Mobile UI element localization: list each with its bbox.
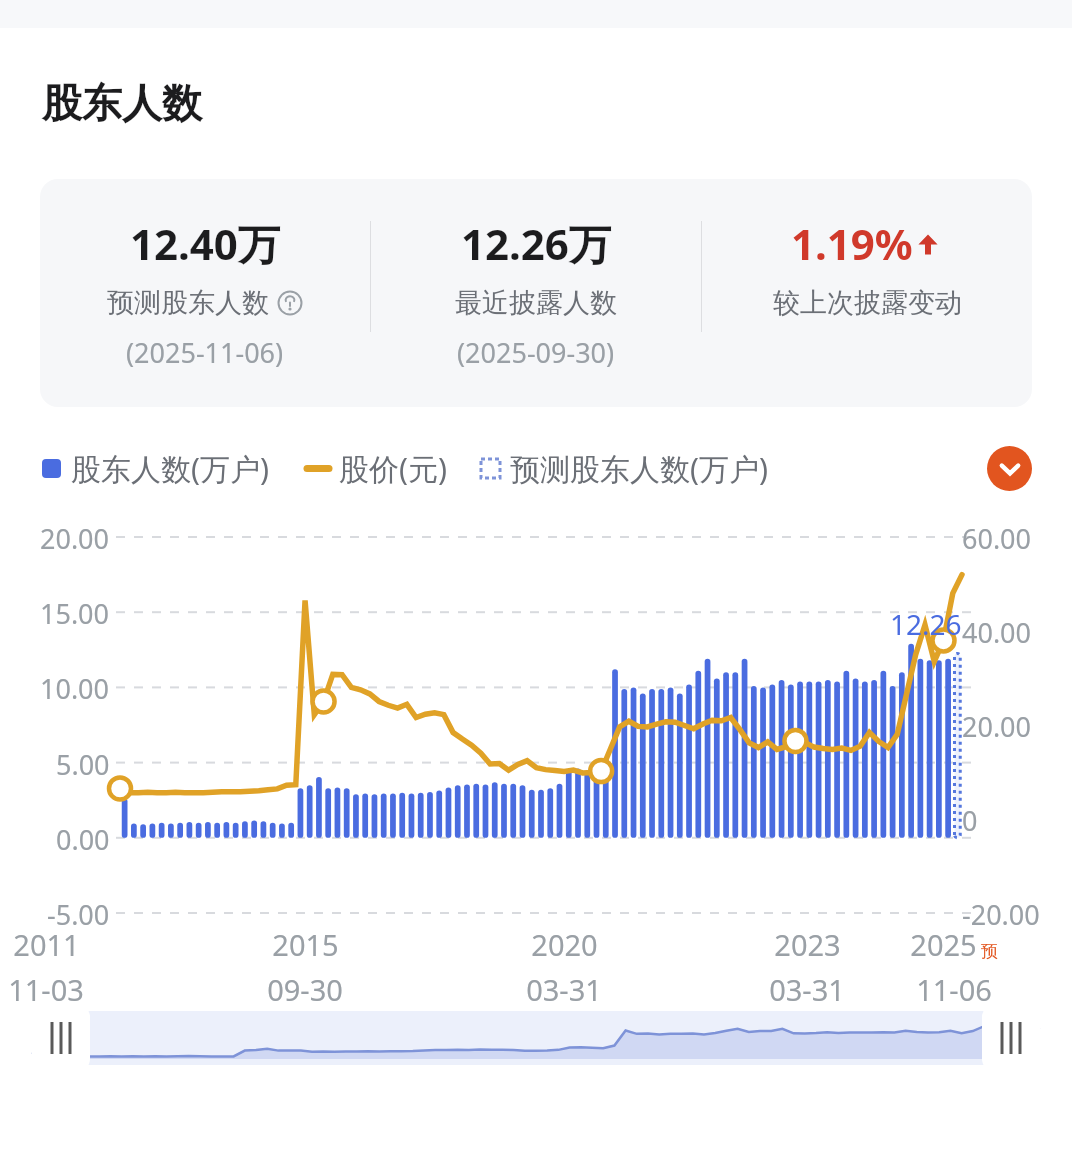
button[interactable]: 展开 [987,446,1032,491]
staticText: 最近披露人数 [455,286,617,320]
staticText: (2025-09-30) [457,334,615,371]
staticText: 40.00 [962,614,1032,651]
staticText: 20.00 [40,520,110,557]
staticText: 0.00 [56,821,110,858]
staticText: 2023 [774,925,841,964]
staticText: 股东人数(万户) [71,448,269,489]
staticText: 09-30 [267,970,343,1009]
button[interactable] [0,513,1072,993]
staticText: 12.26 [890,605,962,643]
staticText: 11-03 [8,970,84,1009]
staticText: 60.00 [962,520,1032,557]
staticText: 03-31 [526,970,602,1009]
staticText: 0 [962,802,978,839]
button[interactable]: 12.26万 [371,179,701,407]
staticText: 股价(元) [339,448,447,489]
staticText: 2020 [531,925,598,964]
button[interactable]: 股东人数(万户) [42,448,269,489]
button[interactable] [32,1005,1040,1077]
staticText: 03-31 [769,970,845,1009]
staticText: 10.00 [40,670,110,707]
staticText: 11-06 [916,970,992,1009]
button[interactable]: 1.19% [702,179,1032,407]
staticText: 股东人数 [42,78,202,128]
staticText: 20.00 [962,708,1032,745]
button[interactable]: 12.40万 [40,179,370,407]
staticText: 1.19% [791,215,913,272]
staticText: 预 [981,941,998,962]
staticText: 预测股东人数(万户) [510,448,768,489]
staticText: -20.00 [962,896,1040,933]
staticText: (2025-11-06) [126,334,284,371]
staticText: -5.00 [47,896,110,933]
staticText: 2015 [272,925,339,964]
button[interactable]: 12.40万 [40,179,1032,407]
staticText: 2025 [910,925,977,964]
staticText: 5.00 [56,746,110,783]
staticText: 预测股东人数 [107,286,269,320]
staticText: 较上次披露变动 [773,286,962,320]
staticText: 12.40万 [130,215,280,272]
other: 说明 [277,290,303,316]
button[interactable]: 预测股东人数(万户) [481,448,768,489]
staticText: 2011 [13,925,80,964]
button[interactable]: 股价(元) [307,448,447,489]
staticText: 15.00 [40,595,110,632]
staticText: 12.26万 [461,215,611,272]
